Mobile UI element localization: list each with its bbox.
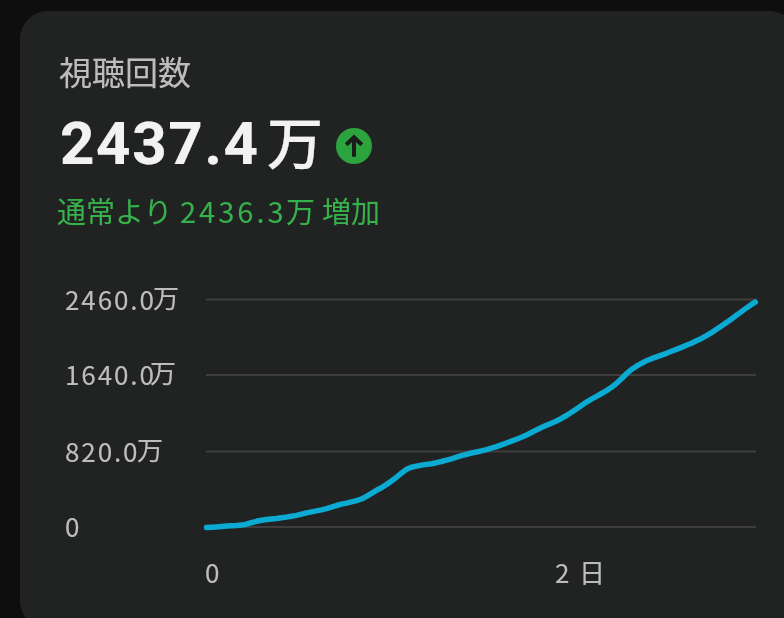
staticText: 820.0: [65, 432, 140, 470]
staticText: 1640.0: [65, 355, 156, 393]
staticText: 2 日: [555, 553, 607, 591]
staticText: 2436.3: [180, 189, 287, 231]
staticText: 万: [267, 99, 323, 180]
staticText: 増加: [322, 189, 381, 231]
staticText: 万: [150, 353, 177, 391]
staticText: 万: [153, 278, 180, 316]
staticText: 0: [205, 553, 222, 591]
staticText: 2460.0: [65, 280, 156, 318]
staticText: 万: [286, 189, 316, 231]
button[interactable]: [20, 11, 784, 618]
staticText: 万: [137, 430, 164, 468]
staticText: 0: [65, 507, 82, 545]
staticText: 通常より: [57, 189, 173, 231]
staticText: 視聴回数: [59, 47, 191, 95]
staticText: 2437.4: [60, 108, 260, 178]
button[interactable]: Increased: [336, 128, 372, 164]
